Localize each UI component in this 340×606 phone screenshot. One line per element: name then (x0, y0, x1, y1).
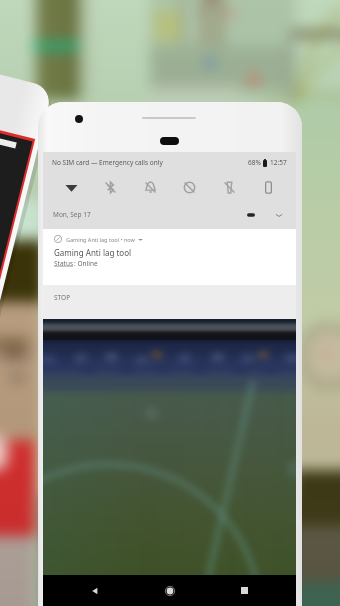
staticText: STOP (54, 293, 71, 302)
staticText: : Online (74, 259, 98, 268)
staticText: 12:57 (270, 158, 287, 167)
button[interactable]: Do not disturb off (138, 175, 162, 199)
staticText: No SIM card — Emergency calls only (52, 158, 163, 167)
button[interactable]: Flashlight off (217, 175, 241, 199)
button[interactable]: STOP (43, 285, 296, 319)
button[interactable]: Cast screen (256, 175, 280, 199)
button[interactable]: Wi-Fi (59, 175, 83, 199)
button[interactable]: Home (148, 575, 192, 606)
button[interactable]: Gaming Anti lag tool • now (43, 229, 296, 285)
button[interactable]: Settings (244, 208, 258, 222)
staticText: Gaming Anti lag tool • now (66, 236, 135, 243)
button[interactable]: Back (73, 575, 117, 606)
button[interactable]: Recents (222, 575, 266, 606)
button[interactable]: Bluetooth off (98, 175, 122, 199)
staticText: Status (54, 259, 74, 268)
staticText: 68% (248, 158, 261, 167)
button[interactable]: Auto rotate off (177, 175, 201, 199)
button[interactable]: Expand (272, 208, 286, 222)
staticText: Mon, Sep 17 (53, 210, 91, 219)
staticText: Gaming Anti lag tool (54, 247, 132, 258)
